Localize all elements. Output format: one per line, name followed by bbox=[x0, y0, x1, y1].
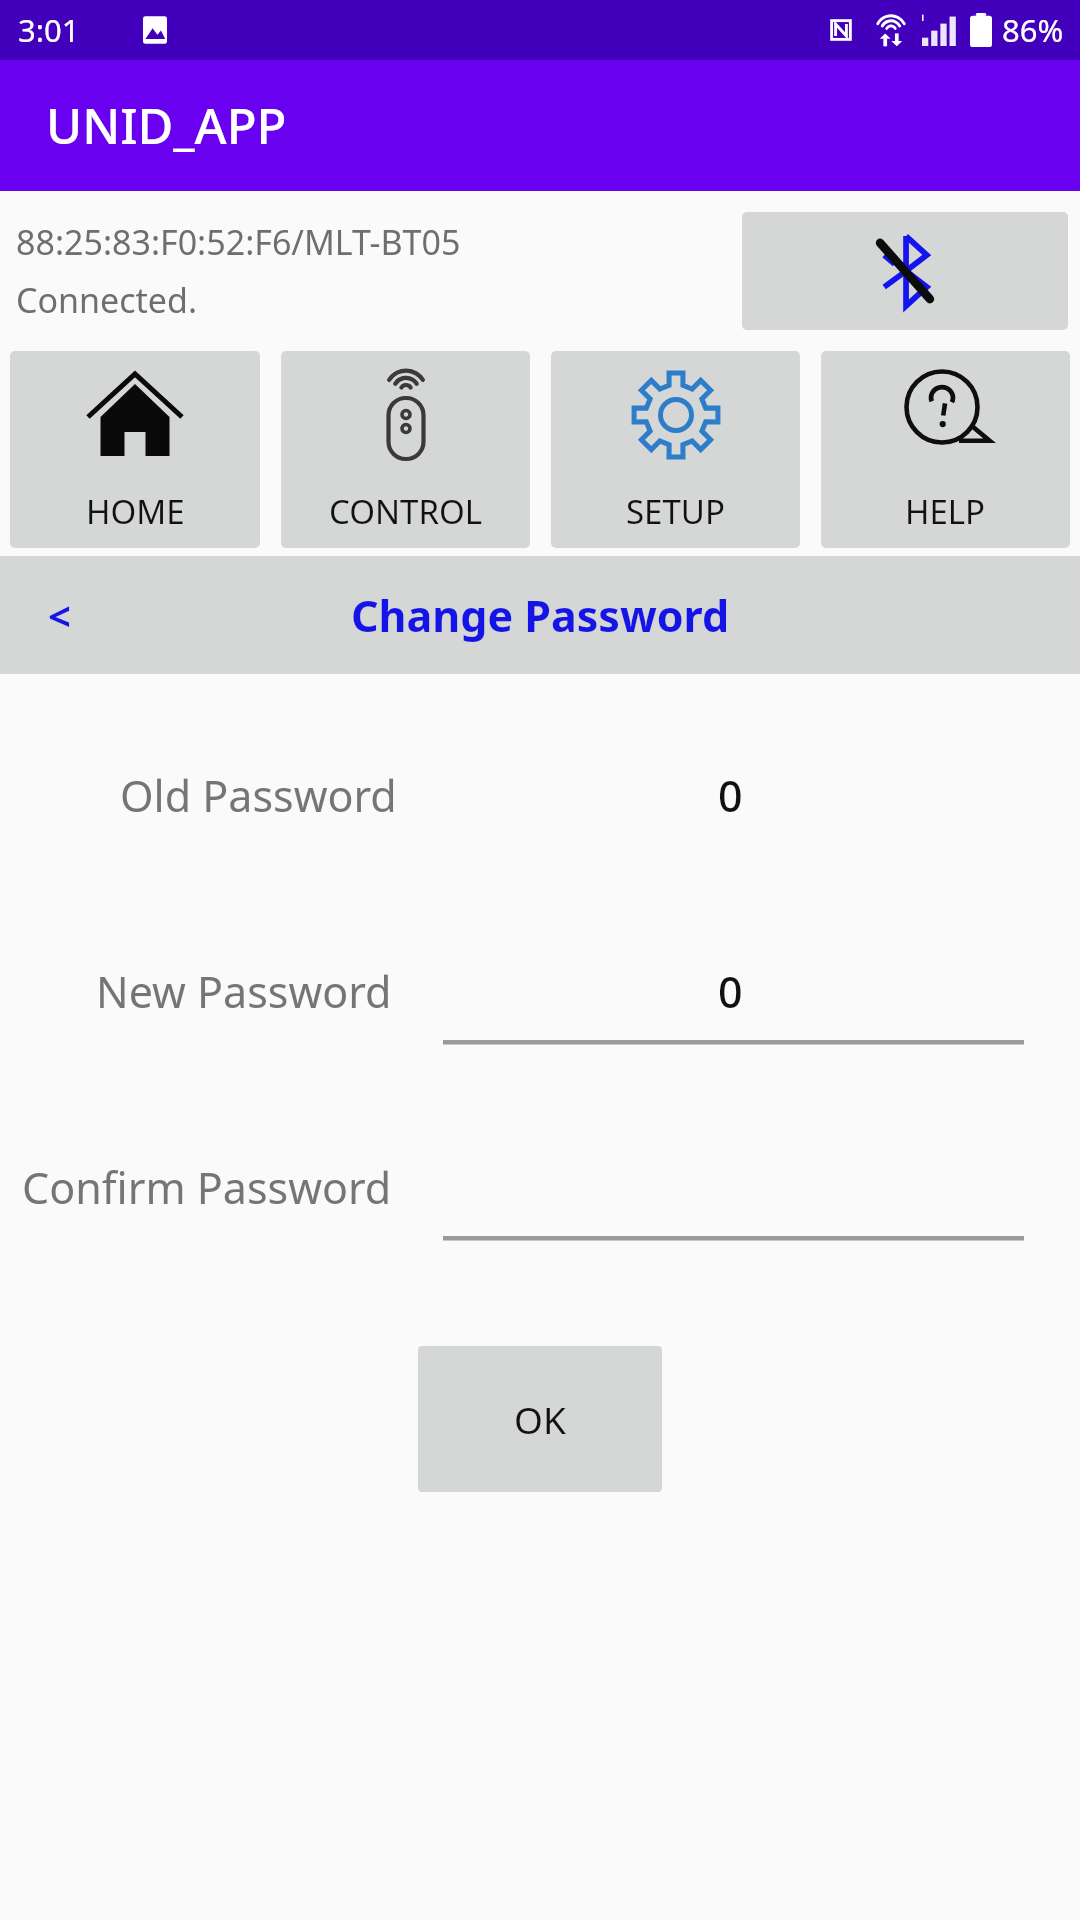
button[interactable]: OK bbox=[418, 1346, 662, 1492]
staticText: 0 bbox=[718, 962, 743, 1021]
button[interactable]: SETUP bbox=[551, 351, 800, 548]
staticText: 0 bbox=[718, 766, 743, 825]
button[interactable]: Back bbox=[0, 556, 118, 674]
staticText: UNID_APP bbox=[46, 92, 287, 159]
button[interactable]: CONTROL bbox=[281, 351, 530, 548]
staticText: HELP bbox=[905, 489, 986, 534]
staticText: Old Password bbox=[120, 766, 397, 825]
staticText: CONTROL bbox=[329, 489, 482, 534]
staticText: HOME bbox=[86, 489, 185, 534]
staticText: Change Password bbox=[351, 586, 730, 645]
button[interactable]: HOME bbox=[10, 351, 260, 548]
staticText: New Password bbox=[96, 962, 392, 1021]
staticText: SETUP bbox=[626, 489, 725, 534]
staticText: 86% bbox=[1002, 9, 1064, 51]
staticText: 88:25:83:F0:52:F6/MLT-BT05 bbox=[16, 219, 461, 265]
staticText: < bbox=[48, 588, 71, 642]
staticText: 3:01 bbox=[18, 9, 80, 51]
staticText: OK bbox=[514, 1394, 566, 1444]
button[interactable]: Disconnect Bluetooth bbox=[742, 212, 1068, 330]
staticText: Connected. bbox=[16, 277, 198, 323]
staticText: Confirm Password bbox=[22, 1158, 392, 1217]
button[interactable]: HELP bbox=[821, 351, 1070, 548]
